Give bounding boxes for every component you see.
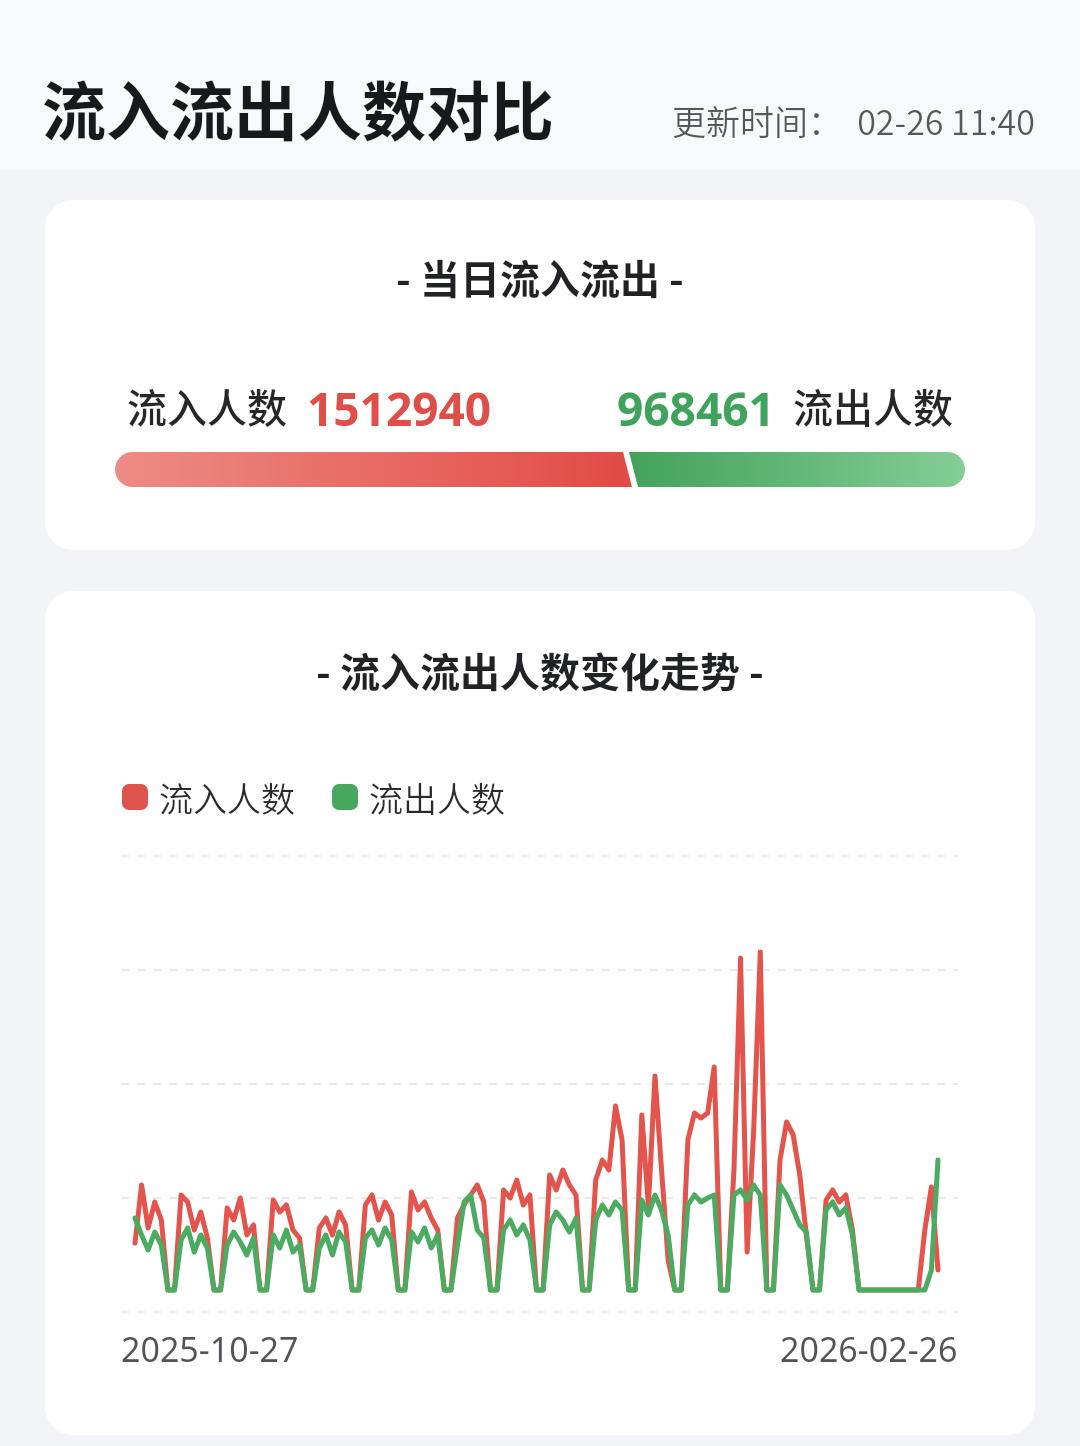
staticText: 2026-02-26 xyxy=(780,1326,958,1366)
staticText: 流出人数 xyxy=(793,377,953,427)
staticText: 968461 xyxy=(617,377,775,427)
staticText: 更新时间： 02-26 11:40 xyxy=(672,96,1035,145)
staticText: 流入人数 xyxy=(127,377,287,427)
staticText: - 流入流出人数变化走势 - xyxy=(316,641,764,699)
staticText: 流入人数 xyxy=(159,773,295,822)
staticText: - 当日流入流出 - xyxy=(396,248,684,306)
button[interactable]: - 当日流入流出 - xyxy=(45,200,1035,550)
staticText: 流入流出人数对比 xyxy=(42,61,554,154)
staticText: 1512940 xyxy=(307,377,492,427)
staticText: 2025-10-27 xyxy=(121,1326,299,1366)
staticText: 流出人数 xyxy=(369,773,505,822)
button[interactable]: - 流入流出人数变化走势 - xyxy=(45,591,1035,1435)
